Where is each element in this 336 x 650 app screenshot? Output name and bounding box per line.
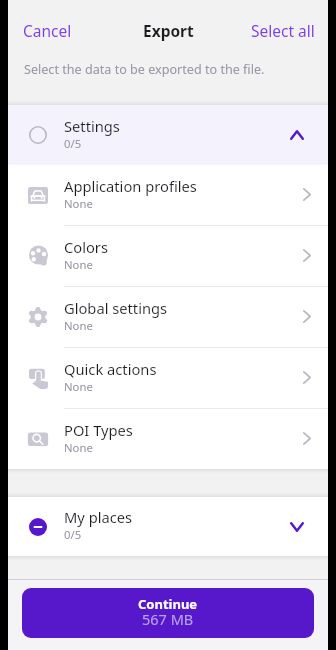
staticText: Quick actions <box>64 359 157 379</box>
staticText: None <box>64 196 93 211</box>
staticText: None <box>64 440 93 455</box>
button[interactable]: Cancel <box>8 8 86 53</box>
button[interactable]: Select all <box>237 8 328 53</box>
staticText: Settings <box>64 116 120 136</box>
staticText: Global settings <box>64 298 168 318</box>
staticText: Colors <box>64 237 108 257</box>
staticText: None <box>64 379 93 394</box>
button[interactable]: POI Types <box>8 409 328 469</box>
staticText: 0/5 <box>64 136 82 151</box>
button[interactable]: Continue <box>22 588 314 638</box>
staticText: Select the data to be exported to the fi… <box>24 61 265 78</box>
staticText: Continue <box>138 595 198 613</box>
button[interactable]: My places <box>8 497 328 556</box>
staticText: 567 MB <box>142 609 194 629</box>
button[interactable]: Collapse Settings <box>275 113 319 157</box>
staticText: Cancel <box>23 20 72 41</box>
staticText: Select all <box>251 20 315 41</box>
button[interactable]: Expand My places <box>275 505 319 549</box>
button[interactable]: Settings <box>8 105 328 165</box>
staticText: Export <box>143 20 194 41</box>
staticText: 0/5 <box>64 527 82 542</box>
staticText: POI Types <box>64 420 133 440</box>
button[interactable]: Application profiles <box>8 165 328 225</box>
staticText: My places <box>64 507 133 527</box>
staticText: None <box>64 257 93 272</box>
button[interactable]: Quick actions <box>8 348 328 408</box>
staticText: Application profiles <box>64 176 197 196</box>
button[interactable]: Global settings <box>8 287 328 347</box>
staticText: None <box>64 318 93 333</box>
button[interactable]: Colors <box>8 226 328 286</box>
